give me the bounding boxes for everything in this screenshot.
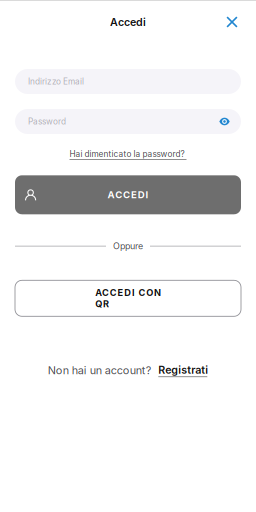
- staticText: Password: [28, 116, 66, 126]
- button[interactable]: ACCEDI: [15, 175, 241, 214]
- staticText: Hai dimenticato la password?: [69, 149, 184, 159]
- button[interactable]: Registrati: [158, 363, 208, 377]
- staticText: Accedi: [110, 15, 146, 28]
- staticText: Oppure: [113, 241, 143, 251]
- button[interactable]: Close: [219, 9, 245, 35]
- staticText: Indirizzo Email: [28, 76, 84, 86]
- staticText: Non hai un account?: [48, 364, 152, 377]
- staticText: Registrati: [158, 363, 208, 376]
- button[interactable]: Show password: [219, 117, 230, 126]
- button[interactable]: ACCEDI CON QR: [15, 280, 241, 316]
- button[interactable]: Hai dimenticato la password?: [69, 149, 186, 160]
- staticText: ACCEDI: [107, 189, 149, 201]
- staticText: ACCEDI CON QR: [95, 287, 161, 309]
